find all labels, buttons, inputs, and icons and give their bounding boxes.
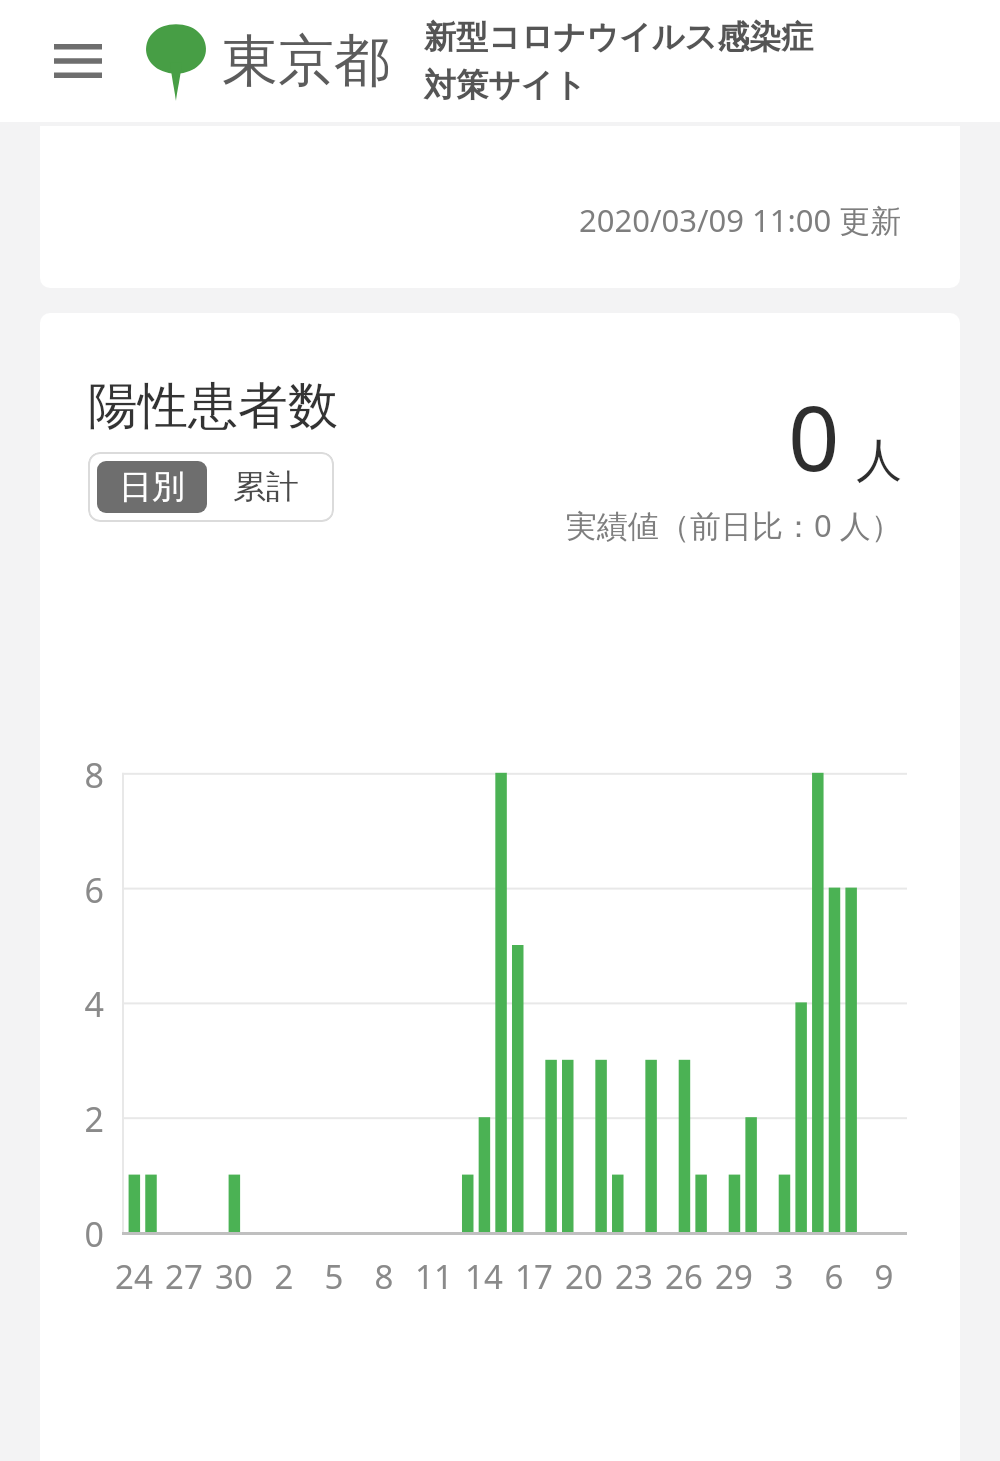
button[interactable]: Open menu <box>48 31 108 91</box>
staticText: 4 <box>60 981 104 1027</box>
staticText: 2 <box>60 1096 104 1142</box>
staticText: 陽性患者数 <box>88 375 338 438</box>
staticText: 2 <box>254 1254 314 1299</box>
staticText: 23 <box>604 1254 664 1299</box>
button[interactable]: 日別 <box>97 461 207 513</box>
staticText: 2020/03/09 11:00 更新 <box>579 199 902 241</box>
staticText: 30 <box>204 1254 264 1299</box>
staticText: 29 <box>704 1254 764 1299</box>
staticText: 実績値（前日比：0 人） <box>566 504 902 546</box>
staticText: 0 <box>60 1211 104 1257</box>
staticText: 26 <box>654 1254 714 1299</box>
staticText: 3 <box>754 1254 814 1299</box>
staticText: 8 <box>60 752 104 798</box>
staticText: 8 <box>354 1254 414 1299</box>
staticText: 17 <box>504 1254 564 1299</box>
staticText: 6 <box>60 867 104 913</box>
staticText: 東京都 <box>222 26 390 97</box>
staticText: 新型コロナウイルス感染症 <box>424 17 814 57</box>
staticText: 日別 <box>119 466 185 508</box>
staticText: 人 <box>856 432 902 490</box>
staticText: 9 <box>854 1254 914 1299</box>
staticText: 24 <box>104 1254 164 1299</box>
button[interactable]: 累計 <box>207 461 325 513</box>
staticText: 5 <box>304 1254 364 1299</box>
staticText: 20 <box>554 1254 614 1299</box>
staticText: 6 <box>804 1254 864 1299</box>
staticText: 0 <box>788 375 840 498</box>
button[interactable]: Tokyo Metropolitan Government <box>134 19 218 103</box>
staticText: 11 <box>404 1254 464 1299</box>
staticText: 27 <box>154 1254 214 1299</box>
staticText: 対策サイト <box>424 65 587 105</box>
staticText: 14 <box>454 1254 514 1299</box>
staticText: 累計 <box>233 466 299 508</box>
